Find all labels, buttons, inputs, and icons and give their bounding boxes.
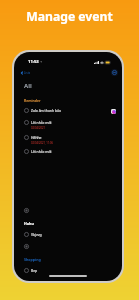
staticText: Vbjvvg bbox=[31, 232, 42, 237]
staticText: Huhu bbox=[24, 221, 34, 226]
staticText: Hêhhe bbox=[31, 135, 42, 140]
staticText: Lời nhắc mới bbox=[31, 120, 52, 125]
button[interactable]: Account bbox=[111, 69, 118, 76]
staticText: Bep bbox=[31, 268, 38, 273]
staticText: All bbox=[24, 82, 32, 90]
button[interactable]: Add reminder bbox=[23, 243, 30, 250]
staticText: 02/04/2021, 11:06 bbox=[31, 141, 53, 145]
button[interactable]: Lời nhắc mới bbox=[14, 149, 122, 154]
button[interactable]: Lời nhắc mới bbox=[14, 120, 122, 130]
staticText: Lists bbox=[24, 71, 31, 75]
button[interactable]: Lists bbox=[20, 70, 32, 76]
button[interactable]: Hêhhe bbox=[14, 135, 122, 145]
button[interactable]: Bep bbox=[14, 268, 122, 273]
staticText: Manage event bbox=[0, 8, 139, 25]
button[interactable]: Zalo âm thanh báo bbox=[14, 108, 122, 113]
staticText: Zalo âm thanh báo bbox=[31, 108, 61, 113]
staticText: 11:53 bbox=[28, 59, 39, 65]
button[interactable]: Vbjvvg bbox=[14, 232, 122, 237]
staticText: Lời nhắc mới bbox=[31, 149, 52, 154]
staticText: Reminder bbox=[24, 98, 41, 103]
button[interactable]: Add reminder bbox=[23, 207, 30, 214]
staticText: Shopping bbox=[24, 257, 41, 262]
staticText: 02/04/2021 bbox=[31, 126, 45, 130]
